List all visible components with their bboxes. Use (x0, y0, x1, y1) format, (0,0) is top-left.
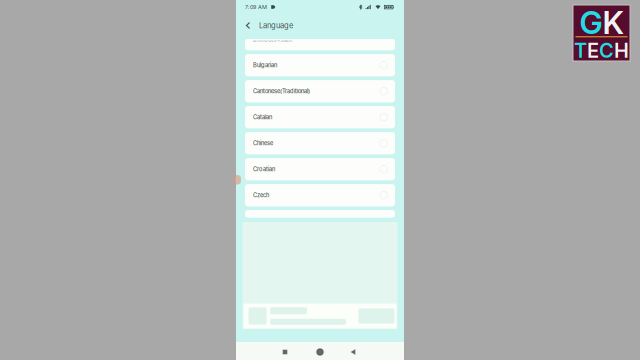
staticText: G (579, 3, 602, 41)
staticText: K (602, 3, 623, 41)
button[interactable]: Cantonese(Traditional) (245, 80, 395, 102)
button[interactable]: Recent apps (274, 342, 296, 360)
staticText: 7:09 AM (245, 4, 267, 10)
staticText: C (599, 38, 614, 62)
staticText: Czech (253, 192, 269, 199)
button[interactable]: Croatian (245, 158, 395, 180)
staticText: Language (259, 21, 293, 30)
staticText: Croatian (253, 166, 275, 173)
staticText: Chinese (253, 140, 273, 147)
button[interactable]: Bulgarian (245, 54, 395, 76)
button[interactable]: Catalan (245, 106, 395, 128)
staticText: E (587, 38, 599, 62)
staticText: Bosnian(Cyrillic) (253, 39, 293, 46)
button[interactable]: Chinese (245, 132, 395, 154)
staticText: T (574, 38, 587, 62)
button[interactable]: Back (342, 342, 364, 360)
staticText: Cantonese(Traditional) (253, 88, 310, 95)
staticText: Catalan (253, 114, 272, 121)
staticText: H (614, 38, 629, 62)
button[interactable]: Back (241, 16, 255, 36)
button[interactable]: Czech (245, 184, 395, 206)
button[interactable]: Home (309, 342, 331, 360)
staticText: Bulgarian (253, 62, 277, 69)
